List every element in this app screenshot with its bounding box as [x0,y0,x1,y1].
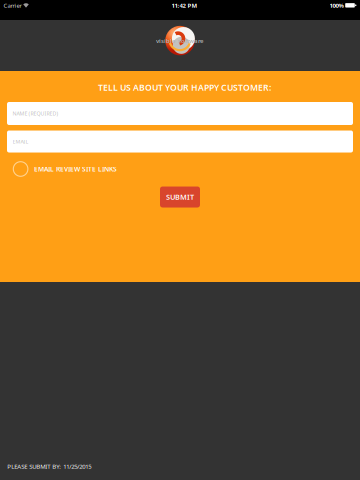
button[interactable]: NAME (REQUIRED) [7,102,353,125]
staticText: NAME (REQUIRED) [12,110,58,117]
staticText: EMAIL REVIEW SITE LINKS [34,164,117,174]
staticText: visible software [156,36,204,45]
staticText: PLEASE SUBMIT BY: 11/25/2015 [7,462,91,471]
button[interactable]: EMAIL REVIEW SITE LINKS [7,161,353,176]
staticText: 100% [330,1,344,9]
button[interactable]: SUBMIT [160,186,200,207]
staticText: SUBMIT [166,192,194,202]
staticText: EMAIL [12,138,28,145]
button[interactable]: EMAIL [7,130,353,152]
staticText: 11:42 PM [172,1,198,9]
staticText: Carrier [3,1,21,9]
staticText: TELL US ABOUT YOUR HAPPY CUSTOMER: [98,82,271,93]
